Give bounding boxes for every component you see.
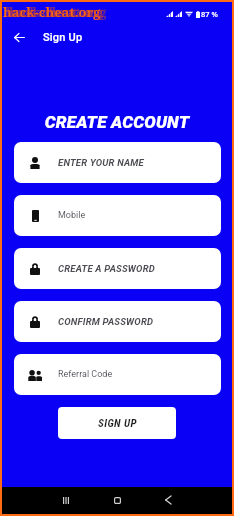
- button[interactable]: CREATE A PASSWORD: [14, 248, 221, 289]
- staticText: CONFIRM PASSWORD: [58, 316, 154, 327]
- staticText: Sign Up: [43, 31, 83, 44]
- staticText: 87 %: [201, 9, 218, 19]
- button[interactable]: SIGN UP: [58, 407, 176, 439]
- staticText: Mobile: [58, 210, 86, 221]
- button[interactable]: Back: [150, 492, 186, 508]
- staticText: hack-cheat.org: [3, 3, 101, 21]
- staticText: ENTER YOUR NAME: [58, 157, 144, 168]
- button[interactable]: CONFIRM PASSWORD: [14, 301, 221, 342]
- button[interactable]: Recent apps: [48, 492, 84, 508]
- staticText: hack-cheat.org: [6, 3, 104, 21]
- staticText: CREATE A PASSWORD: [58, 263, 155, 274]
- button[interactable]: Home: [99, 492, 135, 508]
- staticText: CREATE ACCOUNT: [2, 112, 232, 132]
- button[interactable]: Mobile: [14, 195, 221, 236]
- staticText: SIGN UP: [98, 417, 137, 430]
- button[interactable]: Referral Code: [14, 354, 221, 395]
- staticText: hack-cheat.org: [9, 3, 107, 21]
- button[interactable]: Back: [5, 23, 33, 51]
- button[interactable]: ENTER YOUR NAME: [14, 142, 221, 183]
- staticText: Referral Code: [58, 369, 113, 380]
